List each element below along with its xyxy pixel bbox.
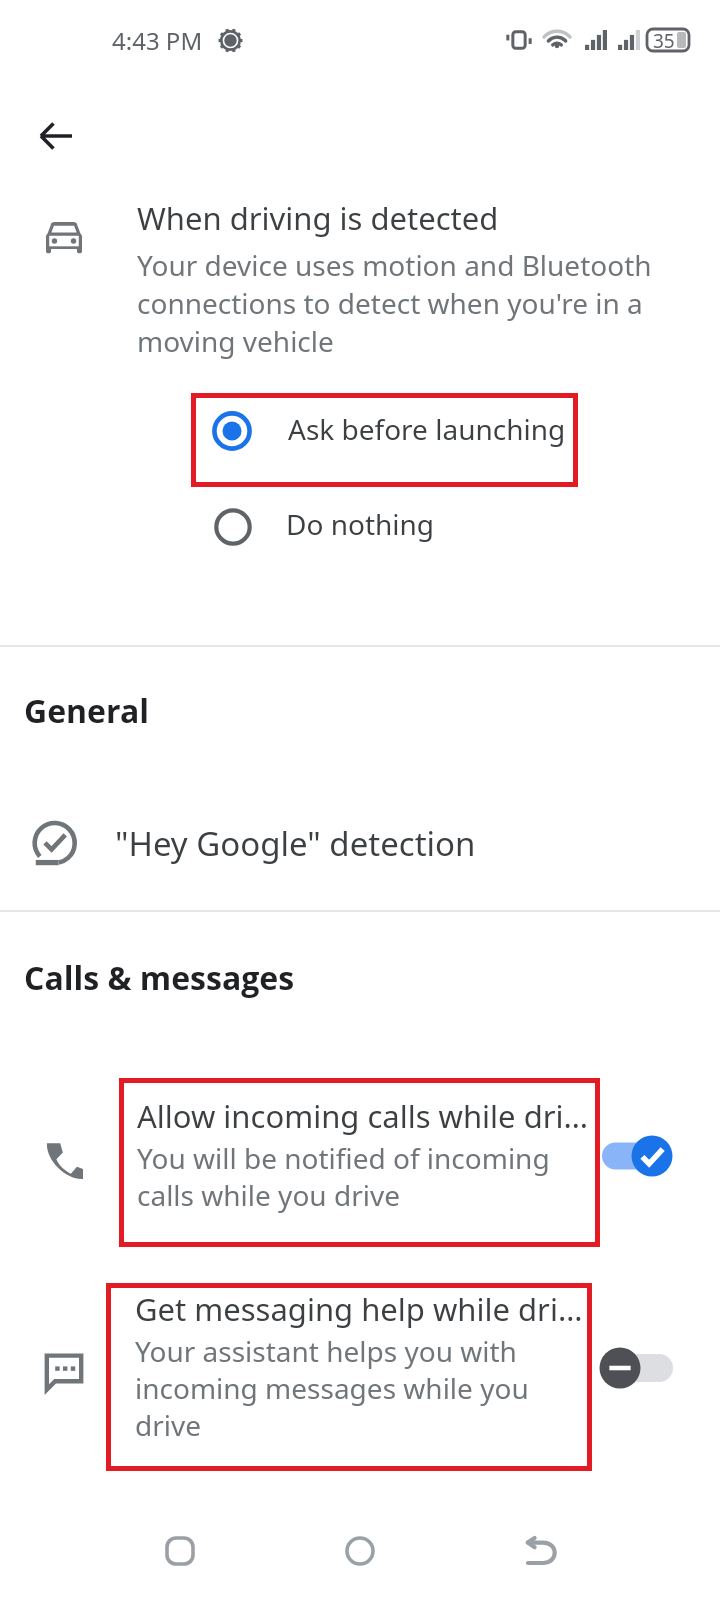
button[interactable]: Home xyxy=(330,1521,390,1581)
staticText: General xyxy=(24,689,149,733)
staticText: Your assistant helps you with incoming m… xyxy=(135,1332,595,1444)
button[interactable] xyxy=(124,1083,595,1242)
button[interactable] xyxy=(0,810,720,882)
button[interactable] xyxy=(205,500,565,554)
button[interactable]: Back xyxy=(510,1521,570,1581)
staticText: Ask before launching xyxy=(288,410,566,448)
staticText: Your device uses motion and Bluetooth co… xyxy=(137,246,657,360)
staticText: Calls & messages xyxy=(24,956,295,1000)
staticText: 4:43 PM xyxy=(112,24,203,57)
button[interactable]: Navigate up xyxy=(24,104,88,168)
staticText: "Hey Google" detection xyxy=(115,821,476,866)
button[interactable]: Allow incoming calls while driving, on xyxy=(596,1131,678,1181)
button[interactable] xyxy=(196,398,573,482)
staticText: Get messaging help while dri… xyxy=(135,1288,583,1330)
button[interactable]: Recent apps xyxy=(150,1521,210,1581)
staticText: You will be notified of incoming calls w… xyxy=(137,1139,597,1214)
staticText: Allow incoming calls while dri… xyxy=(137,1095,589,1137)
staticText: 35 xyxy=(653,28,675,52)
button[interactable] xyxy=(111,1288,587,1466)
staticText: Do nothing xyxy=(286,505,435,543)
staticText: When driving is detected xyxy=(137,197,499,239)
button[interactable]: Get messaging help while driving, off xyxy=(596,1343,678,1393)
